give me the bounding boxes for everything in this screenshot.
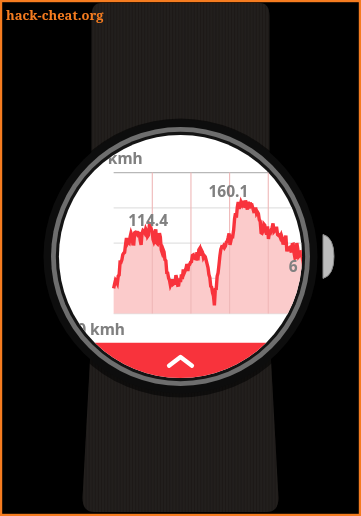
button[interactable]: Speed history chart xyxy=(0,0,361,516)
